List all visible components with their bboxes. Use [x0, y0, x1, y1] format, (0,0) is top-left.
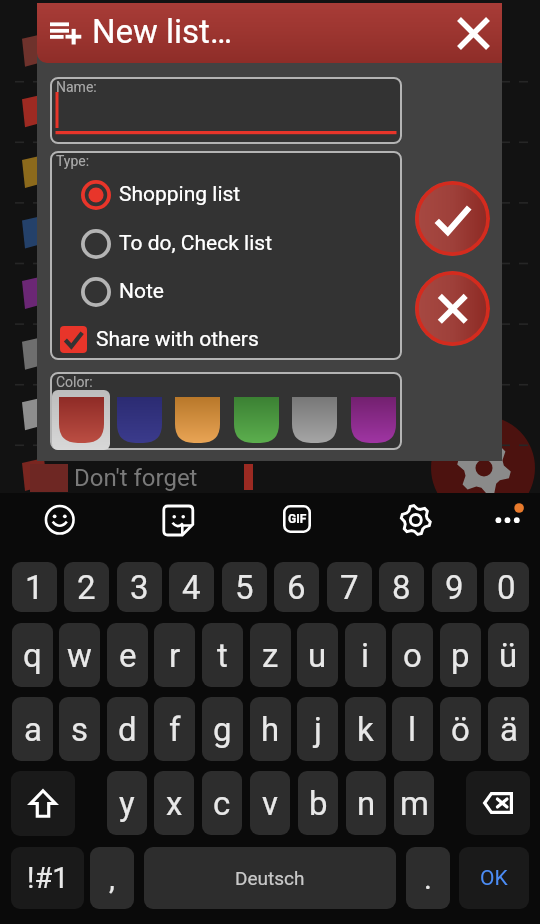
button[interactable]: w [59, 623, 100, 687]
button[interactable]: Share with others [56, 321, 396, 357]
staticText: r [169, 636, 181, 675]
button[interactable]: s [59, 697, 100, 761]
staticText: 7 [340, 568, 359, 607]
staticText: 0 [497, 568, 516, 607]
button[interactable]: 7 [327, 562, 372, 612]
button[interactable]: z [250, 623, 291, 687]
staticText: Deutsch [235, 867, 305, 889]
staticText: g [213, 710, 232, 749]
button[interactable]: i [345, 623, 386, 687]
staticText: ü [499, 636, 518, 675]
staticText: c [213, 784, 231, 823]
staticText: d [118, 710, 137, 749]
staticText: 5 [235, 568, 254, 607]
button[interactable]: To do, Check list [56, 228, 396, 259]
button[interactable]: Backspace [466, 771, 530, 835]
staticText: 3 [130, 568, 149, 607]
button[interactable]: t [202, 623, 243, 687]
button[interactable]: 6 [274, 562, 319, 612]
button[interactable]: Shift [11, 771, 75, 836]
staticText: p [451, 636, 470, 675]
button[interactable]: Colour 3 [227, 390, 285, 450]
staticText: Share with others [96, 327, 259, 352]
button[interactable]: 4 [169, 562, 214, 612]
button[interactable]: 5 [222, 562, 267, 612]
staticText: l [408, 710, 417, 749]
staticText: o [403, 636, 422, 675]
button[interactable]: Cancel [415, 271, 490, 346]
button[interactable]: k [345, 697, 386, 761]
staticText: ö [451, 710, 470, 749]
button[interactable]: GIF [283, 505, 311, 533]
button[interactable]: 8 [379, 562, 424, 612]
button[interactable]: p [440, 623, 481, 687]
button[interactable]: o [392, 623, 433, 687]
button[interactable]: 9 [432, 562, 477, 612]
button[interactable]: f [154, 697, 195, 761]
button[interactable]: OK [459, 847, 529, 909]
button[interactable]: Shopping list [56, 179, 396, 210]
button[interactable]: h [250, 697, 291, 761]
button[interactable]: a [12, 697, 53, 761]
staticText: q [23, 636, 42, 675]
staticText: v [262, 784, 278, 823]
staticText: m [400, 784, 429, 823]
button[interactable]: Note [56, 276, 396, 307]
staticText: a [24, 710, 42, 749]
staticText: Shopping list [119, 182, 241, 207]
staticText: y [119, 784, 135, 823]
button[interactable]: Colour 2 [168, 390, 226, 450]
staticText: Note [119, 279, 164, 304]
staticText: t [217, 636, 228, 675]
button[interactable]: n [346, 771, 386, 835]
staticText: New list… [92, 12, 232, 51]
button[interactable]: ä [488, 697, 529, 761]
button[interactable]: Confirm [415, 181, 490, 256]
button[interactable]: 0 [484, 562, 529, 612]
staticText: Name: [56, 79, 97, 95]
button[interactable]: Settings [394, 498, 438, 542]
staticText: n [357, 784, 376, 823]
button[interactable]: g [202, 697, 243, 761]
button[interactable]: m [394, 771, 434, 835]
button[interactable]: Stickers [157, 498, 201, 542]
button[interactable]: e [107, 623, 148, 687]
staticText: 4 [182, 568, 201, 607]
button[interactable]: y [107, 771, 147, 835]
staticText: ä [500, 710, 518, 749]
staticText: b [309, 784, 328, 823]
button[interactable]: 2 [64, 562, 109, 612]
staticText: . [424, 861, 432, 896]
button[interactable]: ü [488, 623, 529, 687]
staticText: To do, Check list [119, 231, 272, 256]
button[interactable]: !#1 [11, 847, 84, 909]
button[interactable]: Emoji [38, 498, 82, 542]
button[interactable]: Colour 0 [52, 390, 110, 450]
button[interactable]: l [392, 697, 433, 761]
button[interactable]: r [154, 623, 195, 687]
button[interactable]: c [202, 771, 242, 835]
staticText: k [357, 710, 374, 749]
button[interactable]: , [90, 847, 134, 909]
button[interactable]: q [12, 623, 53, 687]
button[interactable]: Colour 1 [110, 390, 168, 450]
button[interactable]: 1 [12, 562, 57, 612]
staticText: Type: [56, 153, 90, 169]
staticText: OK [480, 866, 508, 891]
button[interactable]: ö [440, 697, 481, 761]
button[interactable]: u [297, 623, 338, 687]
button[interactable]: x [154, 771, 194, 835]
button[interactable]: v [250, 771, 290, 835]
button[interactable]: Deutsch [144, 847, 396, 909]
button[interactable]: . [406, 847, 450, 909]
button[interactable]: d [107, 697, 148, 761]
button[interactable]: Colour 5 [344, 390, 402, 450]
button[interactable]: Close [447, 7, 499, 59]
staticText: i [361, 636, 370, 675]
button[interactable]: j [297, 697, 338, 761]
button[interactable]: 3 [117, 562, 162, 612]
button[interactable]: b [298, 771, 338, 835]
staticText: h [261, 710, 280, 749]
button[interactable]: Colour 4 [285, 390, 343, 450]
button[interactable]: More options [490, 496, 530, 536]
